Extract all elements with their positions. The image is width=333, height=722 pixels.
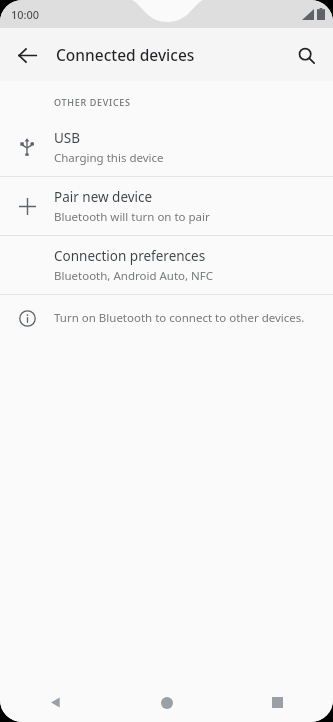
staticText: Charging this device — [54, 150, 164, 166]
staticText: Connected devices — [56, 44, 195, 65]
button[interactable]: USB — [0, 118, 333, 176]
staticText: Bluetooth, Android Auto, NFC — [54, 268, 214, 284]
button[interactable]: Home — [111, 683, 222, 722]
staticText: Connection preferences — [54, 247, 206, 265]
button[interactable]: Search — [285, 34, 327, 76]
button[interactable]: Recent apps — [222, 683, 333, 722]
staticText: Turn on Bluetooth to connect to other de… — [54, 310, 305, 326]
staticText: 10:00 — [11, 7, 40, 22]
button[interactable]: Pair new device — [0, 177, 333, 235]
button[interactable]: Back — [6, 34, 48, 76]
button[interactable]: Connection preferences — [0, 236, 333, 294]
staticText: USB — [54, 129, 81, 147]
staticText: Bluetooth will turn on to pair — [54, 209, 210, 225]
staticText: OTHER DEVICES — [54, 96, 131, 108]
staticText: Pair new device — [54, 188, 153, 206]
button[interactable]: Back — [0, 683, 111, 722]
